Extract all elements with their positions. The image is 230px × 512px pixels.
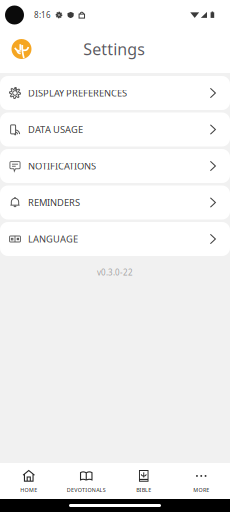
staticText: Settings [83, 38, 145, 60]
button[interactable]: REMINDERS [0, 185, 230, 219]
staticText: NOTIFICATIONS [28, 160, 96, 172]
staticText: BIBLE [136, 486, 151, 494]
staticText: DEVOTIONALS [67, 486, 106, 494]
staticText: 8:16 [34, 10, 51, 20]
button[interactable]: LANGUAGE [0, 222, 230, 256]
button[interactable]: BIBLE [115, 462, 172, 499]
staticText: DISPLAY PREFERENCES [28, 87, 127, 99]
staticText: REMINDERS [28, 196, 80, 209]
button[interactable]: MORE [172, 462, 230, 499]
staticText: MORE [193, 486, 209, 494]
staticText: LANGUAGE [28, 233, 78, 245]
staticText: v0.3.0-22 [97, 267, 133, 278]
button[interactable]: HOME [0, 462, 57, 499]
button[interactable]: NOTIFICATIONS [0, 149, 230, 183]
button[interactable]: DISPLAY PREFERENCES [0, 76, 230, 110]
staticText: DATA USAGE [28, 123, 83, 136]
staticText: HOME [20, 486, 37, 494]
button[interactable]: DEVOTIONALS [57, 462, 115, 499]
button[interactable]: DATA USAGE [0, 112, 230, 146]
